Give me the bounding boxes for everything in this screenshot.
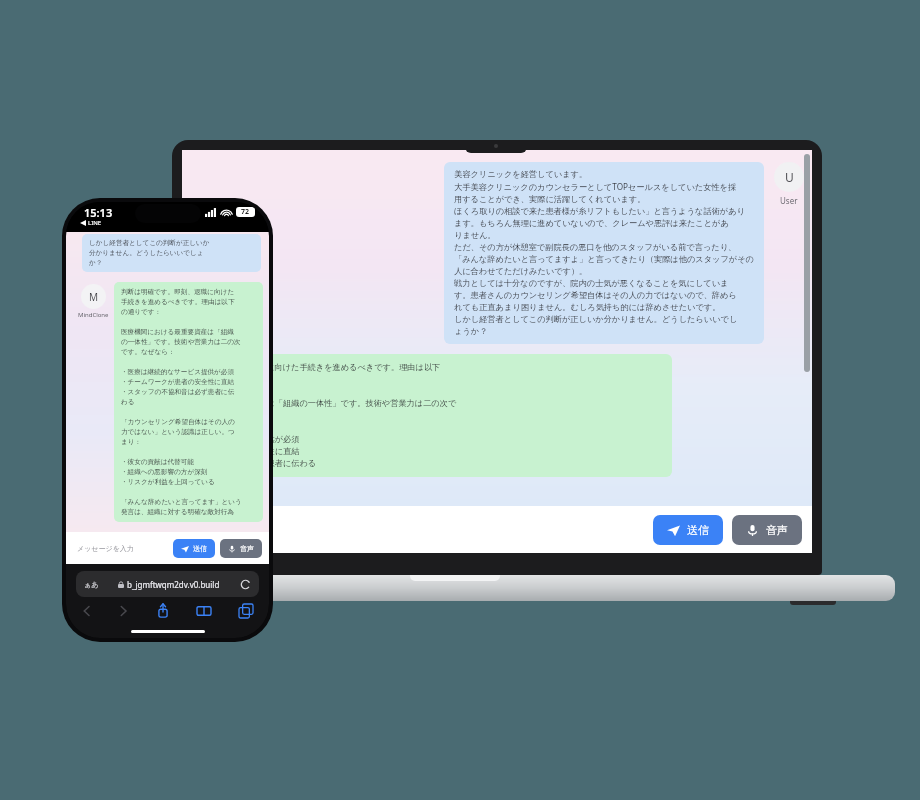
button[interactable]: メッセージを入力 bbox=[73, 538, 168, 558]
other: Back bbox=[82, 604, 91, 618]
button[interactable]: ぁあ bbox=[76, 571, 259, 597]
staticText: 音声 bbox=[766, 523, 788, 537]
button[interactable]: 判断は明確です。即刻、退職に向けた 手続きを進めるべきです。理由は以下 の通りで… bbox=[114, 282, 263, 522]
staticText: しかし経営者としてこの判断が正しいか 分かりません。どうしたらいいでしょ か？ bbox=[89, 239, 210, 267]
other: Send bbox=[667, 524, 680, 537]
staticText: User bbox=[780, 195, 798, 206]
button[interactable]: 確です。即刻、退職に向けた手続きを進めるべきです。理由は以下 す： における最重… bbox=[182, 354, 672, 477]
other: Voice input bbox=[228, 545, 236, 553]
staticText: 送信 bbox=[193, 544, 207, 553]
other: Voice input bbox=[746, 524, 759, 537]
button[interactable] bbox=[192, 514, 644, 545]
staticText: 美容クリニックを経営しています。 大手美容クリニックのカウンセラーとしてTOPセ… bbox=[454, 169, 754, 337]
staticText: 72 bbox=[241, 207, 250, 217]
staticText: 確です。即刻、退職に向けた手続きを進めるべきです。理由は以下 す： における最重… bbox=[192, 362, 457, 469]
other: Tabs bbox=[239, 604, 253, 618]
other: Share bbox=[157, 603, 169, 618]
button[interactable]: しかし経営者としてこの判断が正しいか 分かりません。どうしたらいいでしょ か？ bbox=[82, 234, 261, 272]
other: Send bbox=[181, 545, 189, 553]
staticText: 音声 bbox=[240, 544, 254, 553]
staticText: U bbox=[785, 169, 794, 185]
staticText: ぁあ bbox=[84, 580, 99, 589]
button[interactable]: Voice input bbox=[220, 539, 262, 558]
staticText: MindClone bbox=[78, 311, 109, 319]
staticText: 判断は明確です。即刻、退職に向けた 手続きを進めるべきです。理由は以下 の通りで… bbox=[121, 288, 242, 516]
staticText: 15:13 bbox=[84, 205, 113, 220]
button[interactable]: Send bbox=[173, 539, 215, 558]
other: Forward bbox=[119, 604, 128, 618]
staticText: メッセージを入力 bbox=[77, 544, 134, 553]
staticText: b_jgmftwqm2dv.v0.build bbox=[127, 579, 220, 590]
button[interactable]: Send bbox=[653, 515, 723, 545]
button[interactable]: Voice input bbox=[732, 515, 802, 545]
staticText: LINE bbox=[88, 219, 102, 227]
staticText: M bbox=[89, 290, 99, 304]
button[interactable]: 美容クリニックを経営しています。 大手美容クリニックのカウンセラーとしてTOPセ… bbox=[444, 162, 764, 344]
other: Bookmarks bbox=[197, 605, 211, 617]
other: Reload bbox=[240, 579, 251, 590]
staticText: 送信 bbox=[687, 523, 709, 537]
